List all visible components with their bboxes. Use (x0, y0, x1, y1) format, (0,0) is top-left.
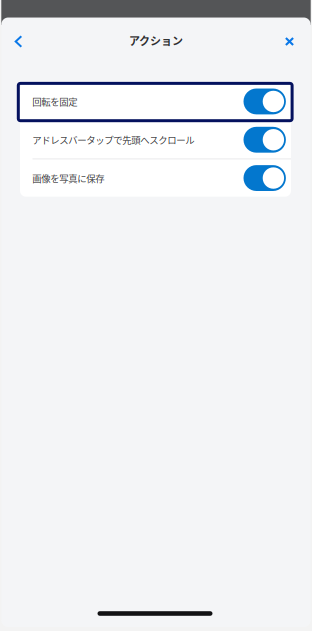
button[interactable]: 閉じる (271, 24, 308, 59)
staticText: 回転を固定 (32, 95, 77, 108)
staticText: アクション (129, 32, 183, 48)
button[interactable]: 戻る (0, 24, 37, 59)
button[interactable]: 画像を写真に保存 (20, 159, 291, 197)
staticText: アドレスバータップで先頭へスクロール (32, 133, 194, 146)
button[interactable]: アドレスバータップで先頭へスクロール (20, 121, 291, 158)
button[interactable]: 回転を固定 (20, 83, 291, 120)
staticText: 画像を写真に保存 (32, 171, 104, 185)
